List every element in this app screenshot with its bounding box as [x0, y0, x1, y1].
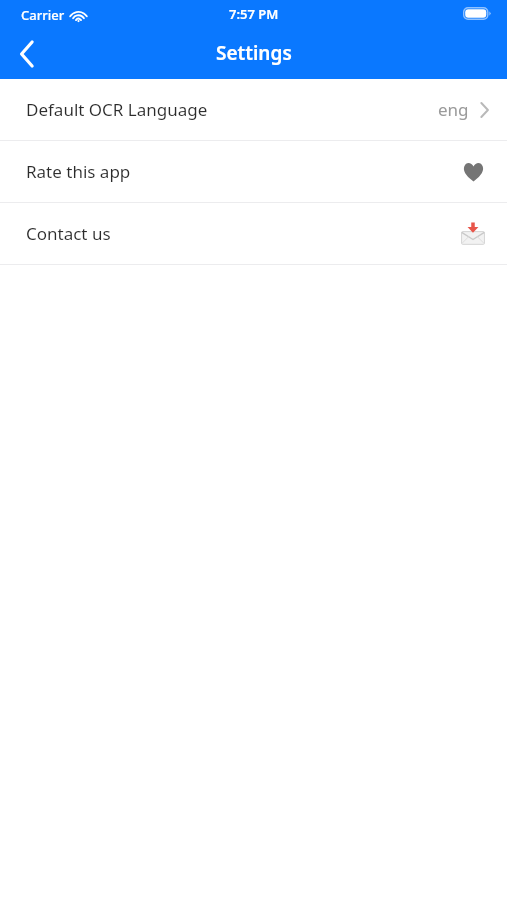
button[interactable]: Contact us [0, 203, 507, 264]
staticText: Default OCR Language [26, 98, 208, 121]
staticText: Settings [216, 40, 292, 66]
staticText: Rate this app [26, 160, 131, 183]
button[interactable]: Default OCR Language [0, 79, 507, 140]
staticText: Carrier [21, 6, 65, 24]
button[interactable]: Back [0, 30, 54, 78]
staticText: 7:57 PM [229, 5, 279, 23]
staticText: Contact us [26, 222, 111, 245]
button[interactable]: Rate this app [0, 141, 507, 202]
staticText: eng [438, 98, 469, 121]
